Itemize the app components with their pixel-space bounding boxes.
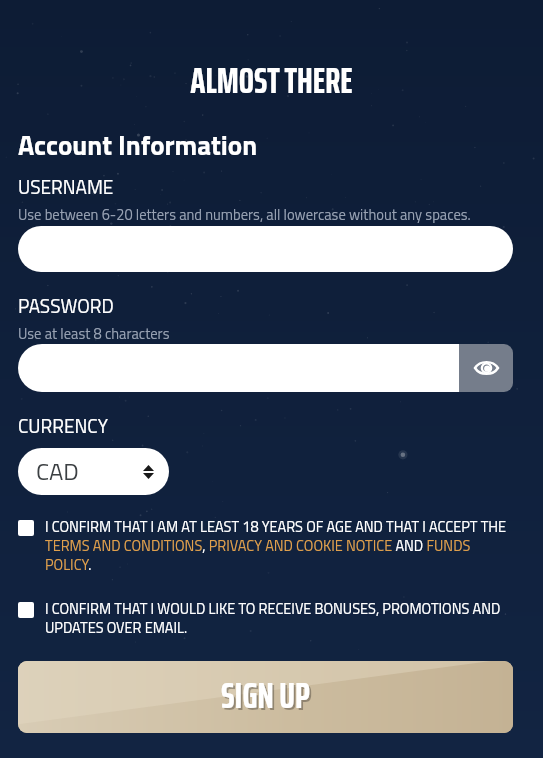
staticText: USERNAME [18,172,114,201]
button[interactable]: I CONFIRM THAT I AM AT LEAST 18 YEARS OF… [18,516,518,576]
staticText: SIGN UP [223,668,312,726]
staticText: SIGN UP [221,666,310,724]
button[interactable]: Show password [459,344,513,392]
staticText: Account Information [18,124,258,165]
button[interactable]: Currency selector [18,448,169,495]
staticText: I CONFIRM THAT I AM AT LEAST 18 YEARS OF… [45,516,518,576]
staticText: Use between 6-20 letters and numbers, al… [18,203,471,225]
staticText: PASSWORD [18,291,114,320]
button[interactable]: Username input [18,226,513,272]
button[interactable]: Password input [18,344,459,392]
staticText: CURRENCY [18,411,108,440]
button[interactable]: SIGN UP [18,661,513,733]
staticText: Use at least 8 characters [18,322,170,344]
staticText: I CONFIRM THAT I WOULD LIKE TO RECEIVE B… [45,598,518,639]
button[interactable]: I CONFIRM THAT I WOULD LIKE TO RECEIVE B… [18,598,518,639]
staticText: CAD [36,453,79,490]
staticText: ALMOST THERE [0,52,543,109]
